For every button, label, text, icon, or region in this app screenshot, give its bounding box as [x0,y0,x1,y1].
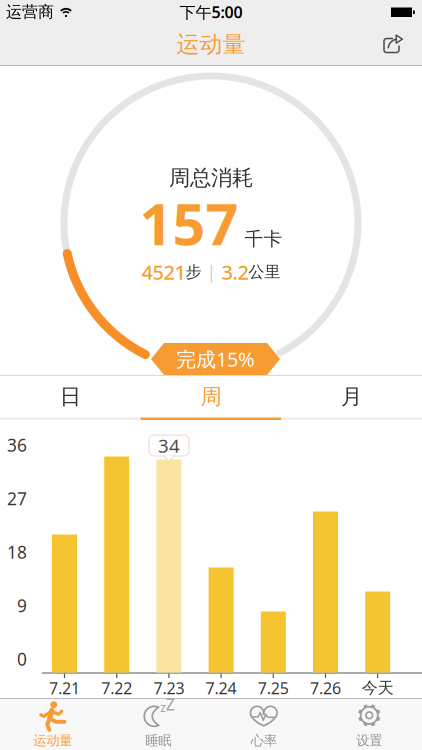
staticText: 日 [60,384,81,410]
button[interactable]: 设置 [316,699,422,750]
staticText: 心率 [251,732,277,749]
staticText: 0 [17,647,27,670]
staticText: 9 [17,594,27,617]
staticText: 运动量 [176,31,245,58]
staticText: 7.22 [101,677,132,699]
staticText: z [160,699,166,715]
staticText: 月 [341,384,362,410]
staticText: 千卡 [244,228,282,250]
staticText: 设置 [356,732,382,749]
staticText: 18 [7,540,27,563]
button[interactable]: 日 [0,376,141,420]
staticText: 今天 [362,678,394,698]
staticText: 7.24 [206,677,237,699]
button[interactable]: 周 [141,376,281,420]
staticText: 4521 [141,259,185,285]
staticText: 7.26 [310,677,341,699]
staticText: 公里 [248,262,280,282]
staticText: 3.2 [221,259,248,285]
staticText: 周总消耗 [169,165,253,191]
button[interactable]: Share [382,31,422,57]
staticText: 运动量 [33,732,72,749]
staticText: Z [166,694,175,715]
staticText: 7.23 [153,677,184,699]
button[interactable]: 心率 [211,699,316,750]
staticText: 7.21 [49,677,80,699]
staticText: 27 [7,487,27,510]
staticText: 下午5:00 [179,1,242,23]
staticText: 步 [185,262,201,282]
button[interactable]: 月 [281,376,422,420]
staticText: 完成15% [176,346,255,372]
staticText: 周 [200,384,221,410]
button[interactable]: 运动量 [0,699,105,750]
staticText: 运营商 [6,2,54,22]
staticText: 157 [139,185,238,261]
staticText: 睡眠 [145,732,171,749]
staticText: 7.25 [258,677,289,699]
staticText: | [201,260,221,283]
button[interactable]: z [105,699,211,750]
staticText: 34 [158,433,180,458]
button[interactable]: 完成15% [151,343,280,375]
staticText: 36 [7,433,27,456]
